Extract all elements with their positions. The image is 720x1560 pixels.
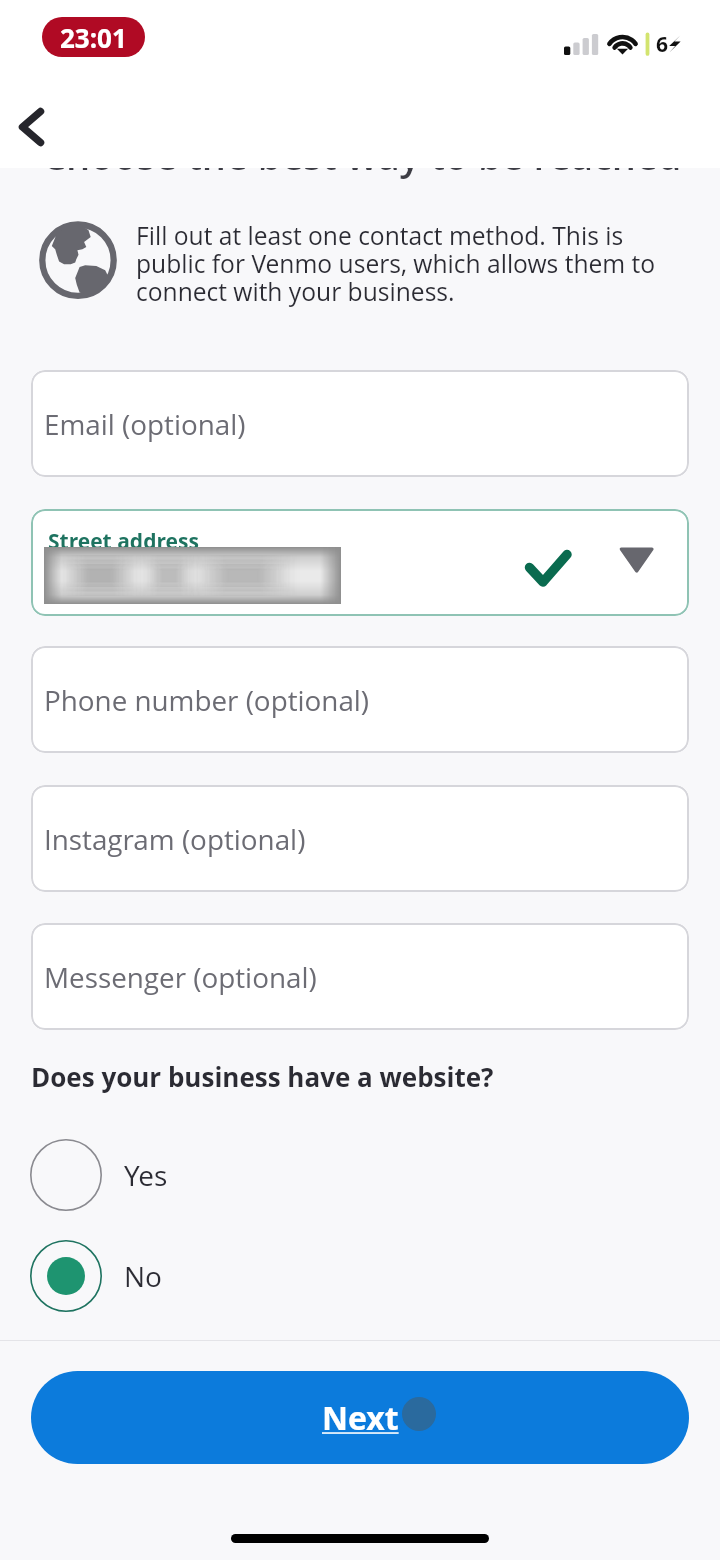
button[interactable]: Phone number (optional) — [31, 646, 689, 753]
staticText: Email (optional) — [44, 405, 246, 443]
staticText: Next — [322, 1396, 399, 1440]
button[interactable]: Next — [31, 1371, 689, 1464]
button[interactable]: No — [30, 1240, 280, 1312]
staticText: Messenger (optional) — [44, 958, 317, 996]
staticText: Phone number (optional) — [44, 681, 370, 719]
button[interactable]: Instagram (optional) — [31, 785, 689, 892]
staticText: 6 — [656, 30, 668, 59]
button[interactable]: Email (optional) — [31, 370, 689, 477]
staticText: Yes — [124, 1156, 168, 1194]
button[interactable]: Street address — [31, 509, 689, 616]
button[interactable]: Messenger (optional) — [31, 923, 689, 1030]
button[interactable]: Yes — [30, 1139, 280, 1211]
staticText: Fill out at least one contact method. Th… — [136, 219, 690, 308]
staticText: Does your business have a website? — [31, 1059, 494, 1094]
staticText: Street address — [48, 527, 199, 556]
staticText: Choose the best way to be reached — [42, 129, 682, 181]
staticText: 23:01 — [60, 20, 127, 55]
staticText: Instagram (optional) — [44, 820, 306, 858]
button[interactable]: Back — [0, 91, 62, 153]
staticText: No — [124, 1257, 163, 1295]
